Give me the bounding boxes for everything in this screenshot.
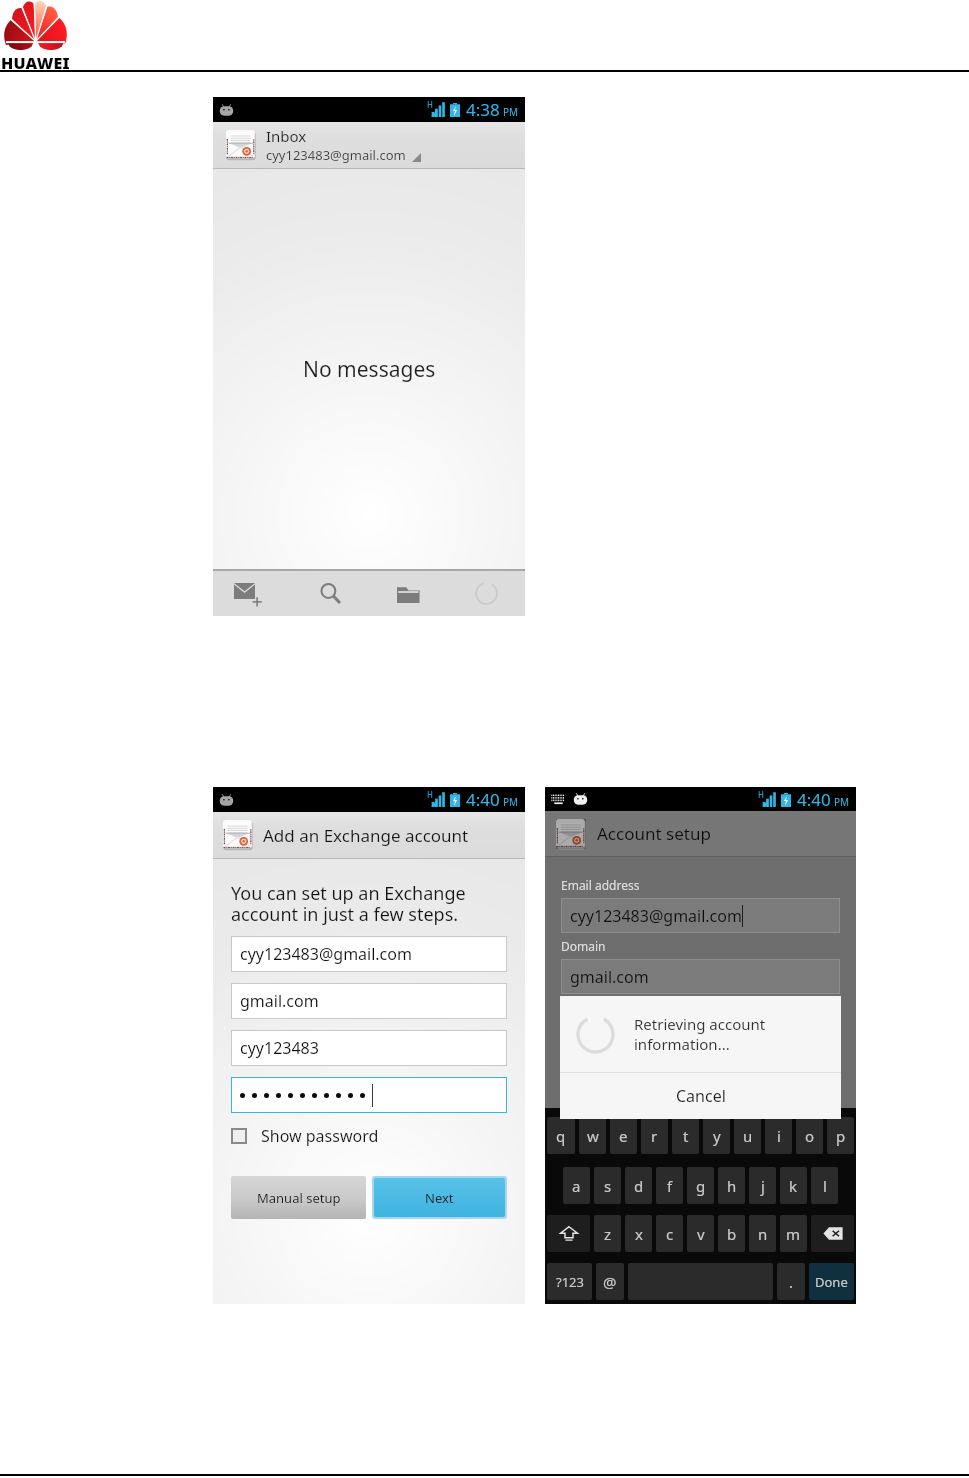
button[interactable]: x (625, 1215, 652, 1252)
button[interactable]: e (610, 1117, 637, 1154)
button[interactable]: Done (809, 1263, 854, 1300)
button[interactable]: . (777, 1263, 805, 1300)
staticText: g (696, 1176, 706, 1196)
staticText: @ (603, 1272, 617, 1292)
staticText: 4:38 (466, 98, 500, 121)
button[interactable]: u (734, 1117, 761, 1154)
staticText: q (556, 1126, 566, 1146)
staticText: z (604, 1224, 612, 1244)
button[interactable]: k (780, 1167, 807, 1204)
button[interactable]: Cancel (560, 1073, 841, 1119)
button[interactable]: r (641, 1117, 668, 1154)
staticText: cyy123483@gmail.com (266, 146, 406, 164)
button[interactable]: Show password (231, 1125, 379, 1147)
button[interactable] (231, 1077, 507, 1113)
staticText: . (789, 1272, 794, 1292)
button[interactable]: cyy123483 (231, 1030, 507, 1066)
button[interactable]: Next (374, 1178, 505, 1217)
button[interactable]: d (625, 1167, 652, 1204)
button[interactable]: Inbox (213, 122, 525, 168)
button[interactable]: a (563, 1167, 590, 1204)
staticText: H (427, 789, 433, 800)
staticText: x (635, 1224, 643, 1244)
staticText: p (836, 1126, 846, 1146)
staticText: Retrieving account information... (634, 1014, 766, 1054)
staticText: Show password (261, 1125, 379, 1147)
button[interactable]: Account setup (545, 811, 856, 856)
staticText: Inbox (266, 126, 307, 146)
staticText: e (619, 1126, 628, 1146)
button[interactable]: Compose (213, 571, 291, 616)
staticText: y (713, 1126, 721, 1146)
button[interactable]: Folders (369, 571, 447, 616)
staticText: b (727, 1224, 737, 1244)
button[interactable]: g (687, 1167, 714, 1204)
button[interactable]: Manual setup (231, 1176, 366, 1219)
button[interactable]: gmail.com (231, 983, 507, 1019)
staticText: 4:40 (466, 788, 500, 811)
button[interactable]: v (687, 1215, 714, 1252)
staticText: v (697, 1224, 705, 1244)
staticText: l (823, 1176, 827, 1196)
staticText: Add an Exchange account (263, 824, 469, 847)
staticText: Done (815, 1273, 848, 1291)
staticText: PM (834, 795, 850, 809)
button[interactable]: y (703, 1117, 730, 1154)
button[interactable]: w (579, 1117, 606, 1154)
staticText: Next (425, 1189, 454, 1207)
staticText: m (786, 1224, 801, 1244)
staticText: H (758, 789, 764, 800)
staticText: You can set up an Exchange account in ju… (231, 881, 466, 927)
button[interactable]: m (780, 1215, 807, 1252)
button[interactable]: @ (596, 1263, 624, 1300)
button[interactable]: o (796, 1117, 823, 1154)
staticText: Domain (561, 938, 606, 954)
staticText: s (604, 1176, 612, 1196)
button[interactable]: i (765, 1117, 792, 1154)
staticText: w (587, 1126, 599, 1146)
staticText: c (666, 1224, 674, 1244)
staticText: Manual setup (257, 1189, 341, 1207)
button[interactable]: j (749, 1167, 776, 1204)
staticText: H (427, 99, 433, 110)
staticText: No messages (303, 355, 436, 384)
button[interactable]: gmail.com (561, 959, 840, 994)
button[interactable]: Shift (547, 1215, 590, 1252)
staticText: gmail.com (570, 966, 649, 988)
button[interactable]: f (656, 1167, 683, 1204)
staticText: u (743, 1126, 753, 1146)
button[interactable]: ?123 (547, 1263, 592, 1300)
button[interactable]: c (656, 1215, 683, 1252)
button[interactable]: h (718, 1167, 745, 1204)
staticText: PM (503, 795, 519, 809)
staticText: j (761, 1176, 765, 1196)
button[interactable]: cyy123483@gmail.com (561, 898, 840, 933)
button[interactable]: Add an Exchange account (213, 812, 525, 858)
button[interactable]: t (672, 1117, 699, 1154)
staticText: Cancel (676, 1085, 726, 1107)
staticText: Account setup (597, 822, 711, 845)
staticText: cyy123483@gmail.com (240, 943, 412, 965)
staticText: ?123 (556, 1273, 584, 1291)
staticText: k (789, 1176, 798, 1196)
button[interactable]: Search (291, 571, 369, 616)
staticText: Email address (561, 877, 640, 893)
button[interactable]: n (749, 1215, 776, 1252)
staticText: PM (503, 105, 519, 119)
button[interactable]: z (594, 1215, 621, 1252)
staticText: r (651, 1126, 658, 1146)
button[interactable]: cyy123483@gmail.com (231, 936, 507, 972)
button[interactable]: b (718, 1215, 745, 1252)
button[interactable]: q (547, 1117, 575, 1154)
button[interactable]: Backspace (811, 1215, 854, 1252)
button[interactable]: l (811, 1167, 838, 1204)
staticText: a (572, 1176, 581, 1196)
button[interactable]: p (827, 1117, 854, 1154)
staticText: cyy123483@gmail.com (570, 905, 742, 927)
staticText: d (634, 1176, 644, 1196)
staticText: cyy123483 (240, 1037, 319, 1059)
staticText: h (727, 1176, 737, 1196)
button[interactable]: s (594, 1167, 621, 1204)
